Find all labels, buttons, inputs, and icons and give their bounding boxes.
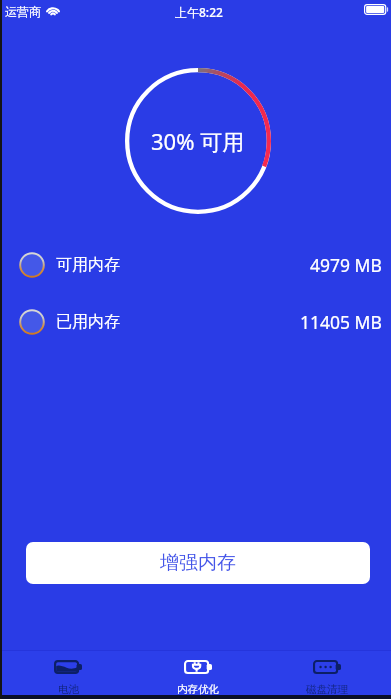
staticText: 增强内存 bbox=[160, 551, 236, 575]
button[interactable]: 可用内存 bbox=[0, 252, 391, 278]
button[interactable]: 内存优化 bbox=[133, 651, 262, 699]
button[interactable]: 电池 bbox=[3, 651, 133, 699]
staticText: 11405 MB bbox=[300, 310, 382, 334]
staticText: 上午8:22 bbox=[175, 4, 223, 20]
button[interactable]: 增强内存 bbox=[26, 542, 370, 584]
staticText: 磁盘清理 bbox=[306, 683, 348, 696]
staticText: 4979 MB bbox=[310, 253, 382, 277]
staticText: 可用内存 bbox=[56, 255, 120, 275]
staticText: 30% 可用 bbox=[151, 126, 245, 156]
staticText: 内存优化 bbox=[177, 683, 219, 696]
button[interactable]: 磁盘清理 bbox=[262, 651, 391, 699]
button[interactable]: 已用内存 bbox=[0, 309, 391, 335]
staticText: 电池 bbox=[58, 683, 79, 696]
staticText: 已用内存 bbox=[56, 312, 120, 332]
staticText: 运营商 bbox=[5, 4, 41, 19]
